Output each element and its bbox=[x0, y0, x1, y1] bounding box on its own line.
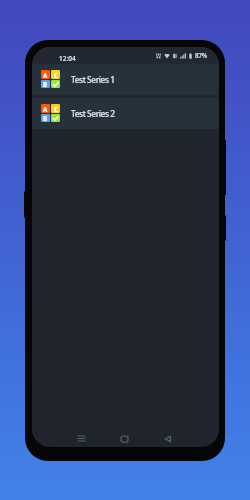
button[interactable]: Back bbox=[157, 428, 178, 447]
button[interactable]: A bbox=[32, 98, 219, 129]
staticText: A bbox=[43, 105, 48, 113]
staticText: A bbox=[43, 71, 48, 79]
staticText: C bbox=[54, 71, 58, 79]
staticText: B bbox=[43, 114, 48, 122]
staticText: 12:04 bbox=[59, 54, 76, 63]
staticText: C bbox=[54, 105, 58, 113]
button[interactable]: Recent apps bbox=[71, 428, 92, 447]
button[interactable]: Home bbox=[114, 428, 135, 447]
button[interactable]: A bbox=[32, 64, 219, 95]
staticText: Test Series 2 bbox=[71, 108, 115, 119]
staticText: B bbox=[43, 80, 48, 88]
staticText: 87% bbox=[195, 51, 207, 60]
staticText: Test Series 1 bbox=[71, 74, 115, 85]
